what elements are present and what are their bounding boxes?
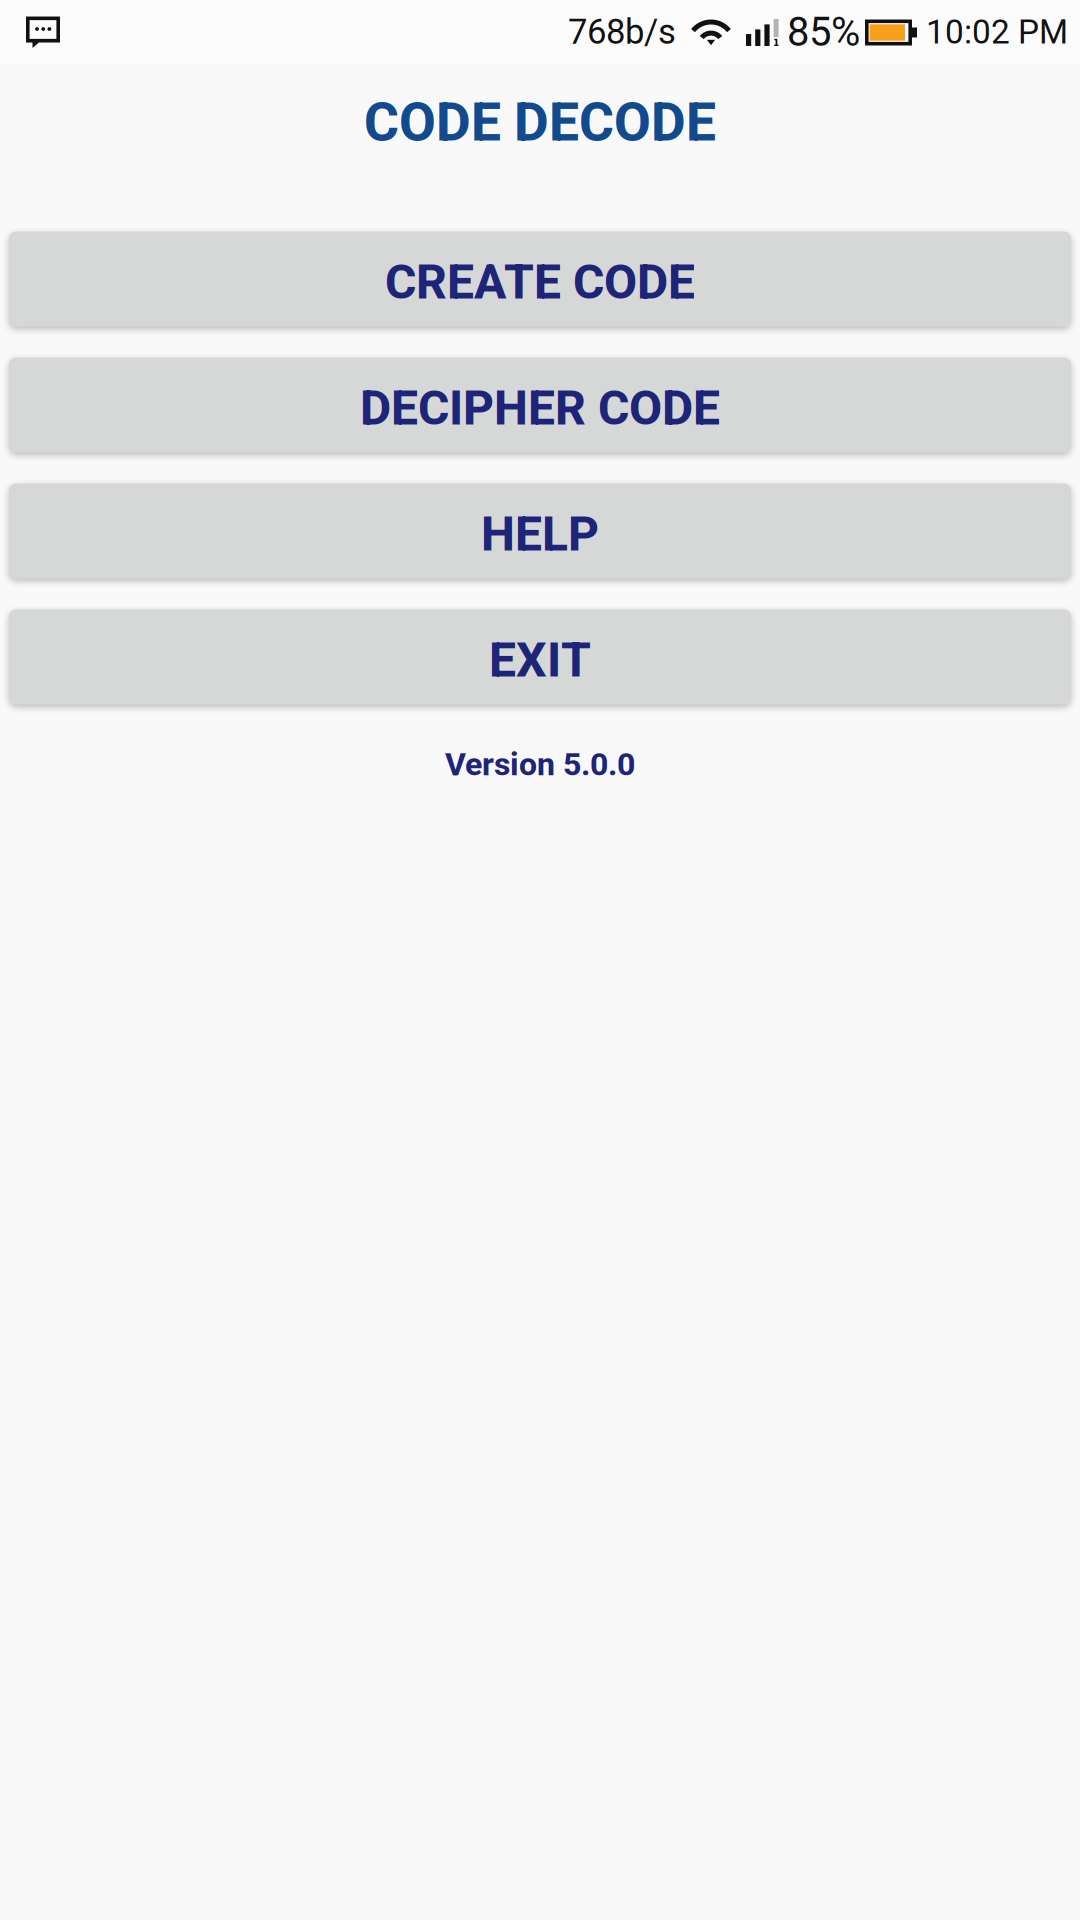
button[interactable]: DECIPHER CODE xyxy=(9,357,1071,452)
staticText: EXIT xyxy=(489,632,591,688)
staticText: 85% xyxy=(787,9,860,55)
button[interactable]: EXIT xyxy=(9,609,1071,704)
button[interactable]: HELP xyxy=(9,483,1071,578)
button[interactable]: CREATE CODE xyxy=(9,231,1071,326)
staticText: 768b/s xyxy=(568,12,676,52)
staticText: 10:02 PM xyxy=(926,12,1068,52)
staticText: CODE DECODE xyxy=(364,91,716,153)
staticText: HELP xyxy=(481,506,599,562)
staticText: CREATE CODE xyxy=(385,254,695,310)
staticText: DECIPHER CODE xyxy=(360,380,720,436)
staticText: Version 5.0.0 xyxy=(445,745,635,783)
